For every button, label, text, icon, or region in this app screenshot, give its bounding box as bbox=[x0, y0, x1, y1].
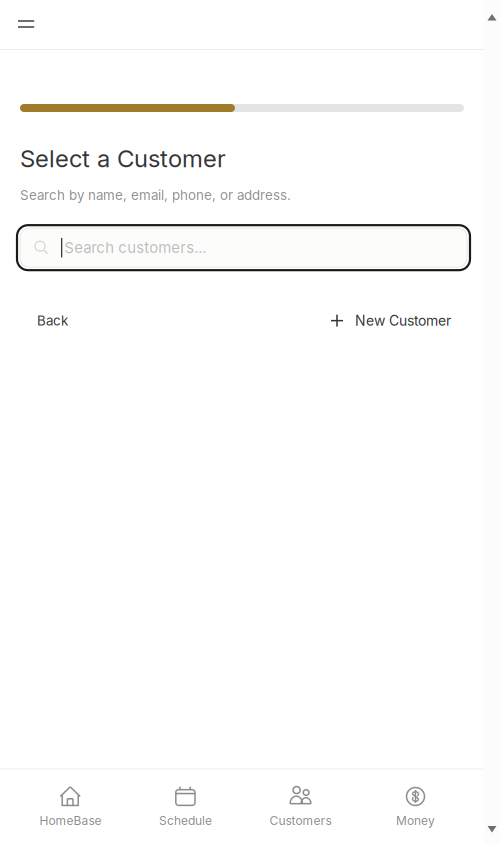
staticText: Select a Customer bbox=[20, 144, 226, 173]
staticText: New Customer bbox=[355, 312, 451, 329]
button[interactable]: Menu bbox=[0, 1, 48, 49]
staticText: Back bbox=[37, 313, 68, 329]
staticText: Schedule bbox=[159, 813, 212, 828]
button[interactable]: New Customer bbox=[315, 303, 467, 338]
staticText: HomeBase bbox=[39, 813, 101, 828]
button[interactable]: Customers bbox=[243, 768, 358, 845]
staticText: Customers bbox=[269, 813, 331, 828]
staticText: Search by name, email, phone, or address… bbox=[20, 187, 291, 203]
button[interactable]: HomeBase bbox=[13, 768, 128, 845]
staticText: Search customers... bbox=[64, 239, 206, 257]
button[interactable]: Money bbox=[358, 768, 473, 845]
button[interactable]: Back bbox=[20, 304, 85, 338]
button[interactable]: Schedule bbox=[128, 768, 243, 845]
staticText: Money bbox=[396, 813, 435, 828]
